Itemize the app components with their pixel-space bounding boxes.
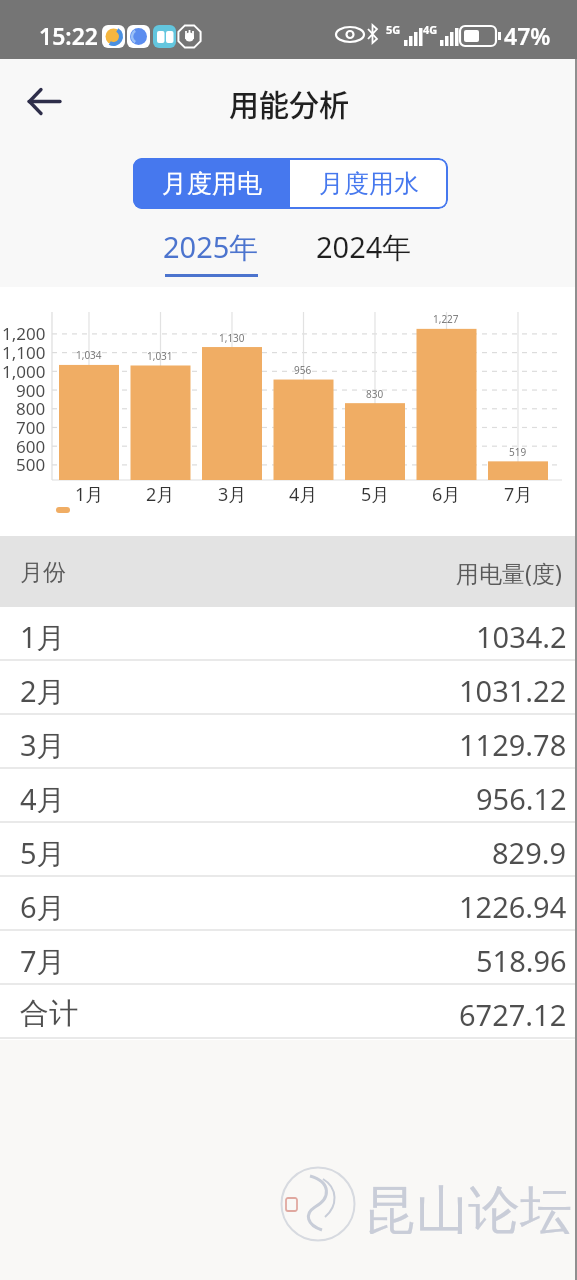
staticText: 3月	[218, 482, 247, 507]
staticText: 5月	[20, 833, 66, 867]
staticText: 1,000	[2, 360, 46, 382]
staticText: 956.12	[476, 779, 567, 813]
staticText: 1226.94	[459, 887, 567, 921]
staticText: 5月	[361, 482, 390, 507]
staticText: 5G	[386, 22, 401, 36]
button[interactable]	[16, 79, 72, 127]
staticText: 15:22	[39, 20, 98, 46]
staticText: 47%	[504, 20, 551, 46]
staticText: 800	[16, 397, 46, 419]
staticText: 4月	[20, 779, 66, 813]
button[interactable]: 合计	[0, 985, 577, 1039]
staticText: 519	[509, 445, 527, 459]
staticText: 用能分析	[229, 81, 349, 121]
button[interactable]: 月度用电	[133, 158, 290, 209]
staticText: 月度用水	[319, 168, 419, 199]
staticText: 2月	[20, 671, 66, 705]
staticText: 829.9	[492, 833, 567, 867]
staticText: 518.96	[476, 941, 567, 975]
staticText: 600	[16, 435, 46, 457]
staticText: 7月	[20, 941, 66, 975]
staticText: 3月	[20, 725, 66, 759]
staticText: 830	[366, 387, 384, 401]
button[interactable]: 4月	[0, 769, 577, 823]
button[interactable]: 5月	[0, 823, 577, 877]
staticText: 4月	[289, 482, 318, 507]
staticText: 用电量(度)	[456, 557, 562, 587]
button[interactable]: 2025年	[140, 219, 282, 281]
staticText: 6月	[20, 887, 66, 921]
staticText: 2025年	[163, 227, 259, 267]
staticText: 6727.12	[459, 995, 567, 1029]
staticText: 900	[16, 379, 46, 401]
staticText: 1034.2	[476, 617, 567, 651]
staticText: 月度用电	[162, 168, 262, 199]
button[interactable]: 月度用水	[290, 158, 448, 209]
staticText: 昆山论坛	[364, 1178, 572, 1234]
button[interactable]: 3月	[0, 715, 577, 769]
staticText: 2月	[146, 482, 175, 507]
button[interactable]: 2月	[0, 661, 577, 715]
staticText: 1,100	[2, 341, 46, 363]
staticText: 7月	[504, 482, 533, 507]
staticText: 1,031	[147, 349, 173, 363]
staticText: 956	[294, 363, 312, 377]
staticText: 6月	[432, 482, 461, 507]
staticText: 1月	[20, 617, 66, 651]
button[interactable]: 6月	[0, 877, 577, 931]
staticText: 1,227	[433, 312, 459, 326]
button[interactable]: 7月	[0, 931, 577, 985]
staticText: 1月	[75, 482, 104, 507]
staticText: 4G	[423, 22, 438, 36]
button[interactable]: 1月	[0, 607, 577, 661]
button[interactable]: 2024年	[291, 219, 436, 281]
staticText: 1031.22	[459, 671, 567, 705]
staticText: 月份	[20, 558, 66, 587]
staticText: 700	[16, 416, 46, 438]
staticText: 1,130	[219, 331, 245, 345]
staticText: 500	[16, 453, 46, 475]
staticText: 1,034	[76, 348, 102, 362]
staticText: 1129.78	[459, 725, 567, 759]
staticText: 1,200	[2, 322, 46, 344]
staticText: 合计	[20, 995, 78, 1029]
staticText: 2024年	[316, 227, 412, 267]
